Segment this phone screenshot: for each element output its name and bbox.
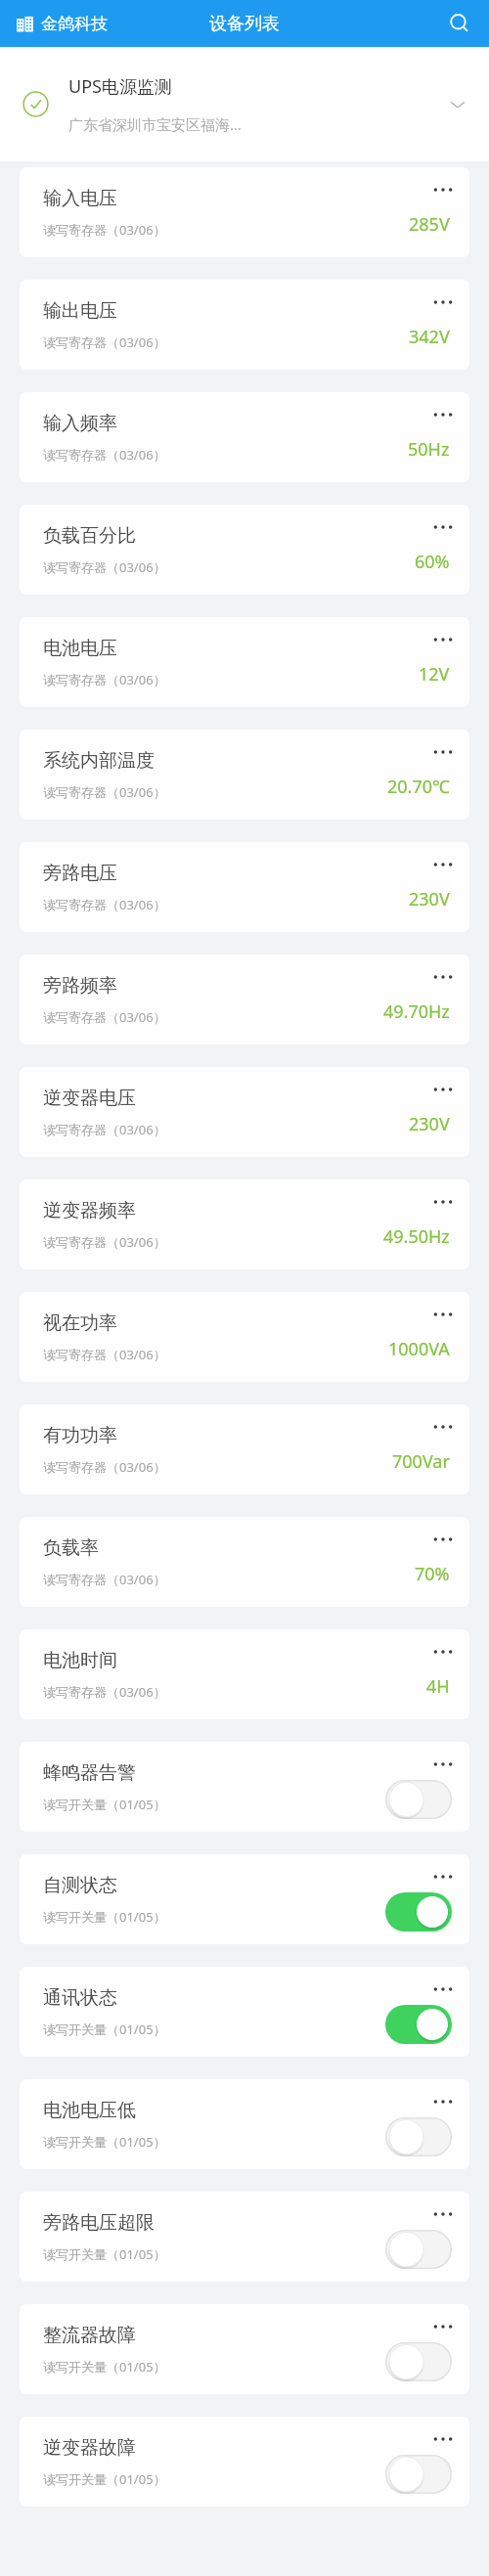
- staticText: 逆变器故障: [43, 2436, 136, 2460]
- staticText: 输出电压: [43, 299, 117, 323]
- button[interactable]: More options: [426, 2310, 460, 2343]
- button[interactable]: 输入电压: [20, 167, 469, 257]
- staticText: 12V: [419, 662, 450, 687]
- staticText: 读写寄存器（03/06）: [43, 1571, 166, 1588]
- button[interactable]: More options: [426, 2085, 460, 2118]
- button[interactable]: 通讯状态: [20, 1967, 469, 2057]
- staticText: 旁路电压: [43, 862, 117, 885]
- staticText: 电池电压低: [43, 2099, 136, 2122]
- staticText: 有功功率: [43, 1424, 117, 1447]
- button[interactable]: 逆变器电压: [20, 1067, 469, 1157]
- staticText: 读写开关量（01/05）: [43, 2245, 166, 2263]
- staticText: 342V: [409, 325, 450, 349]
- button[interactable]: More options: [426, 1298, 460, 1331]
- button[interactable]: 逆变器故障: [20, 2417, 469, 2507]
- staticText: 读写寄存器（03/06）: [43, 1458, 166, 1476]
- button[interactable]: 电池电压低: [20, 2079, 469, 2169]
- button[interactable]: More options: [426, 960, 460, 994]
- staticText: 700Var: [392, 1449, 450, 1474]
- staticText: 4H: [426, 1674, 450, 1699]
- button[interactable]: 系统内部温度: [20, 730, 469, 820]
- button[interactable]: 蜂鸣器告警: [20, 1742, 469, 1832]
- button[interactable]: 电池时间: [20, 1629, 469, 1719]
- button[interactable]: 金鸽科技: [16, 14, 108, 34]
- staticText: 逆变器电压: [43, 1087, 136, 1110]
- button[interactable]: 有功功率: [20, 1404, 469, 1494]
- button[interactable]: More options: [426, 1973, 460, 2006]
- button[interactable]: 负载率: [20, 1517, 469, 1607]
- button[interactable]: 输出电压: [20, 280, 469, 370]
- button[interactable]: 电池电压: [20, 617, 469, 707]
- staticText: 金鸽科技: [41, 14, 108, 34]
- button[interactable]: More options: [426, 1748, 460, 1781]
- staticText: 电池电压: [43, 637, 117, 660]
- staticText: 50Hz: [408, 437, 450, 462]
- button[interactable]: Toggle on: [385, 2005, 452, 2044]
- button[interactable]: 旁路电压: [20, 842, 469, 932]
- staticText: 60%: [415, 550, 450, 574]
- staticText: 读写寄存器（03/06）: [43, 783, 166, 801]
- button[interactable]: 逆变器频率: [20, 1179, 469, 1269]
- staticText: 读写寄存器（03/06）: [43, 671, 166, 688]
- button[interactable]: More options: [426, 848, 460, 881]
- button[interactable]: 旁路电压超限: [20, 2192, 469, 2282]
- staticText: 读写开关量（01/05）: [43, 2358, 166, 2376]
- staticText: 读写开关量（01/05）: [43, 2470, 166, 2488]
- button[interactable]: More options: [426, 1860, 460, 1893]
- staticText: UPS电源监测: [68, 74, 172, 99]
- staticText: 蜂鸣器告警: [43, 1761, 136, 1785]
- staticText: 输入电压: [43, 187, 117, 210]
- button[interactable]: Toggle off: [385, 1780, 452, 1819]
- staticText: 1000VA: [388, 1337, 450, 1361]
- staticText: 读写寄存器（03/06）: [43, 1121, 166, 1138]
- button[interactable]: 输入频率: [20, 392, 469, 482]
- button[interactable]: More options: [426, 398, 460, 431]
- staticText: 读写开关量（01/05）: [43, 1908, 166, 1926]
- staticText: 读写寄存器（03/06）: [43, 558, 166, 576]
- button[interactable]: More options: [426, 1635, 460, 1668]
- button[interactable]: More options: [426, 1073, 460, 1106]
- button[interactable]: UPS电源监测: [0, 47, 489, 161]
- button[interactable]: More options: [426, 735, 460, 769]
- button[interactable]: 旁路频率: [20, 955, 469, 1044]
- button[interactable]: 整流器故障: [20, 2304, 469, 2394]
- button[interactable]: More options: [426, 2198, 460, 2231]
- staticText: 自测状态: [43, 1874, 117, 1897]
- button[interactable]: Toggle off: [385, 2230, 452, 2269]
- staticText: 设备列表: [209, 13, 280, 35]
- staticText: 读写开关量（01/05）: [43, 2133, 166, 2151]
- staticText: 读写寄存器（03/06）: [43, 1683, 166, 1701]
- button[interactable]: More options: [426, 173, 460, 206]
- staticText: 通讯状态: [43, 1986, 117, 2010]
- staticText: 广东省深圳市宝安区福海…: [68, 114, 242, 134]
- button[interactable]: 视在功率: [20, 1292, 469, 1382]
- staticText: 读写寄存器（03/06）: [43, 1233, 166, 1251]
- staticText: 读写开关量（01/05）: [43, 2021, 166, 2038]
- button[interactable]: Toggle off: [385, 2455, 452, 2494]
- staticText: 230V: [409, 1112, 450, 1136]
- staticText: 读写寄存器（03/06）: [43, 333, 166, 351]
- button[interactable]: More options: [426, 1523, 460, 1556]
- button[interactable]: 自测状态: [20, 1854, 469, 1944]
- button[interactable]: 负载百分比: [20, 505, 469, 595]
- button[interactable]: Toggle on: [385, 1892, 452, 1932]
- button[interactable]: More options: [426, 286, 460, 319]
- staticText: 旁路电压超限: [43, 2211, 155, 2235]
- button[interactable]: More options: [426, 1185, 460, 1219]
- button[interactable]: More options: [426, 511, 460, 544]
- button[interactable]: Toggle off: [385, 2342, 452, 2381]
- button[interactable]: Search: [440, 4, 479, 43]
- staticText: 49.50Hz: [383, 1224, 450, 1249]
- staticText: 整流器故障: [43, 2324, 136, 2347]
- button[interactable]: More options: [426, 1410, 460, 1443]
- staticText: 负载率: [43, 1536, 99, 1560]
- staticText: 读写寄存器（03/06）: [43, 1008, 166, 1026]
- button[interactable]: Toggle off: [385, 2117, 452, 2156]
- staticText: 读写寄存器（03/06）: [43, 446, 166, 464]
- staticText: 旁路频率: [43, 974, 117, 998]
- staticText: 输入频率: [43, 412, 117, 435]
- button[interactable]: More options: [426, 623, 460, 656]
- staticText: 20.70℃: [387, 775, 450, 799]
- button[interactable]: Expand: [440, 87, 475, 122]
- button[interactable]: More options: [426, 2422, 460, 2456]
